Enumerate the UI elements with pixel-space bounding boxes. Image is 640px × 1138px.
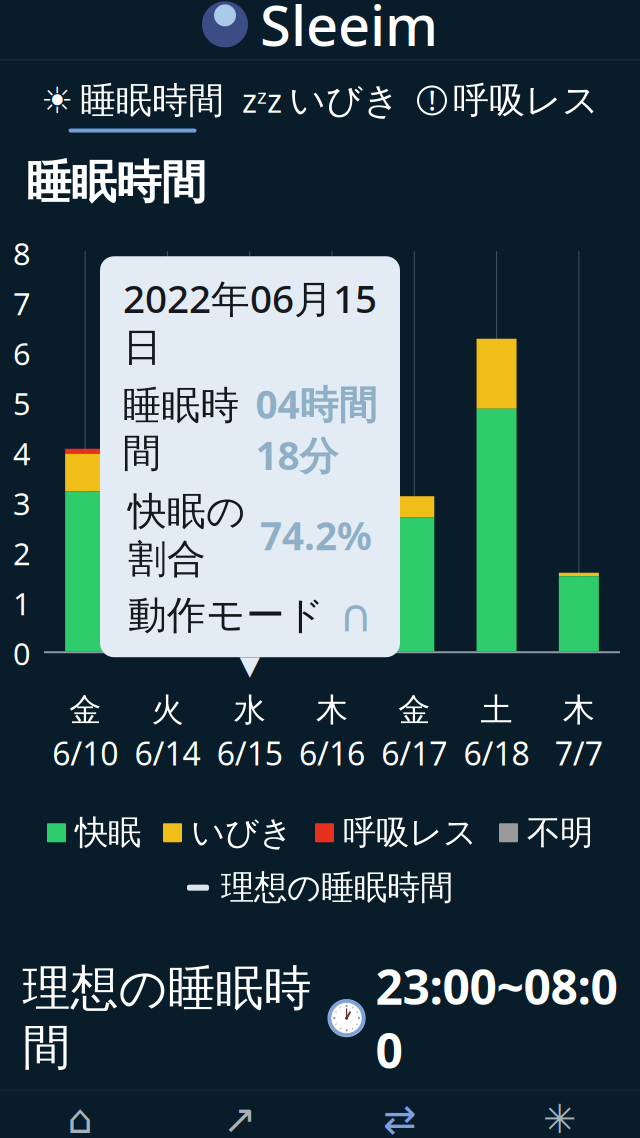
staticText: 呼吸レス: [343, 812, 477, 853]
staticText: 呼吸レス: [453, 78, 599, 122]
staticText: 快眠: [75, 812, 141, 853]
staticText: zᶻz: [242, 79, 282, 122]
button[interactable]: ↗: [160, 1084, 320, 1138]
staticText: ⌂: [67, 1096, 92, 1138]
staticText: 04時間18分: [255, 378, 377, 481]
staticText: 6/17: [381, 732, 447, 774]
staticText: 木: [563, 690, 595, 730]
staticText: 土: [481, 690, 513, 730]
staticText: 1: [13, 583, 31, 624]
staticText: 7/7: [555, 732, 603, 774]
staticText: 睡眠時間: [26, 155, 206, 210]
button[interactable]: ⌂: [0, 1084, 160, 1138]
staticText: ☀︎: [41, 80, 73, 121]
staticText: 火: [151, 690, 183, 730]
staticText: 0: [13, 633, 31, 674]
staticText: 3: [13, 483, 31, 524]
staticText: !: [428, 83, 435, 118]
button[interactable]: ☀︎: [35, 78, 230, 132]
staticText: 23:00~08:00: [375, 954, 617, 1082]
staticText: 快眠の割合: [128, 488, 246, 583]
staticText: いびき: [289, 78, 400, 122]
button[interactable]: zᶻz: [230, 78, 412, 132]
staticText: 7: [13, 283, 31, 324]
staticText: 金: [69, 690, 101, 730]
button[interactable]: ✳: [480, 1084, 640, 1138]
staticText: 水: [234, 690, 266, 730]
staticText: ▼: [239, 650, 260, 680]
staticText: 木: [316, 690, 348, 730]
staticText: ↗: [223, 1096, 257, 1138]
staticText: ✳: [543, 1096, 577, 1138]
staticText: 睡眠時間: [80, 78, 224, 122]
staticText: ∩: [339, 590, 372, 641]
staticText: 6: [13, 333, 31, 374]
staticText: 6/10: [52, 732, 118, 774]
staticText: 理想の睡眠時間: [22, 959, 311, 1077]
button[interactable]: !: [412, 78, 605, 132]
staticText: 6/14: [134, 732, 200, 774]
staticText: 不明: [527, 812, 593, 853]
staticText: ⇄: [383, 1096, 417, 1138]
staticText: 2: [13, 533, 31, 574]
staticText: 🕐: [325, 998, 368, 1038]
staticText: いびき: [191, 812, 293, 853]
staticText: 動作モード: [128, 592, 325, 639]
staticText: 6/18: [464, 732, 530, 774]
staticText: 5: [13, 383, 31, 424]
staticText: 理想の睡眠時間: [221, 867, 453, 908]
staticText: 睡眠時間: [122, 382, 239, 477]
staticText: 4: [13, 433, 31, 474]
staticText: 6/15: [217, 732, 283, 774]
staticText: 8: [13, 233, 31, 274]
button[interactable]: ⇄: [320, 1084, 480, 1138]
staticText: 2022年06月15日: [123, 272, 377, 371]
staticText: 金: [398, 690, 430, 730]
staticText: Sleeim: [260, 0, 438, 62]
staticText: 74.2%: [260, 510, 372, 561]
staticText: 6/16: [299, 732, 365, 774]
